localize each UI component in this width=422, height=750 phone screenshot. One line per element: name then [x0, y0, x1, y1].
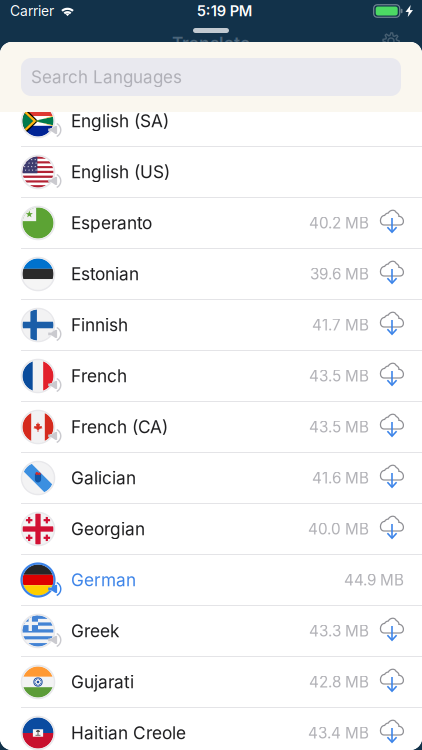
staticText: 43.5 MB	[309, 367, 369, 385]
button[interactable]: Estonian	[0, 249, 422, 300]
button[interactable]: Search Languages	[21, 58, 401, 96]
button[interactable]: English (US)	[0, 147, 422, 198]
button[interactable]: French	[0, 351, 422, 402]
staticText: Search Languages	[31, 67, 182, 87]
button[interactable]: Galician	[0, 453, 422, 504]
staticText: 43.4 MB	[308, 724, 369, 742]
staticText: 42.8 MB	[309, 673, 369, 691]
staticText: 43.5 MB	[309, 418, 369, 436]
staticText: Gujarati	[71, 672, 134, 692]
staticText: 40.0 MB	[308, 520, 369, 538]
staticText: English (SA)	[71, 111, 169, 131]
staticText: Georgian	[71, 519, 145, 539]
button[interactable]: Georgian	[0, 504, 422, 555]
staticText: Translate	[172, 33, 250, 54]
staticText: Finnish	[71, 315, 128, 335]
button[interactable]: Haitian Creole	[0, 708, 422, 750]
staticText: 41.6 MB	[312, 469, 369, 487]
button[interactable]: Esperanto	[0, 198, 422, 249]
staticText: Estonian	[71, 264, 139, 284]
staticText: 44.9 MB	[344, 571, 404, 589]
button[interactable]: Finnish	[0, 300, 422, 351]
button[interactable]: Gujarati	[0, 657, 422, 708]
staticText: Carrier	[10, 3, 54, 19]
button[interactable]: French (CA)	[0, 402, 422, 453]
button[interactable]: Greek	[0, 606, 422, 657]
staticText: 5:19 PM	[197, 2, 253, 20]
staticText: 40.2 MB	[309, 214, 369, 232]
staticText: English (US)	[71, 162, 170, 182]
staticText: Galician	[71, 468, 136, 488]
button[interactable]: German	[0, 555, 422, 606]
staticText: Greek	[71, 621, 119, 641]
staticText: 43.3 MB	[309, 622, 369, 640]
staticText: 41.7 MB	[312, 316, 369, 334]
staticText: French (CA)	[71, 417, 168, 437]
staticText: French	[71, 366, 127, 386]
staticText: Haitian Creole	[71, 723, 186, 743]
button[interactable]: English (SA)	[0, 96, 422, 147]
staticText: Esperanto	[71, 213, 152, 233]
staticText: German	[71, 570, 136, 590]
staticText: 39.6 MB	[310, 265, 369, 283]
button[interactable]: Settings	[382, 32, 400, 50]
